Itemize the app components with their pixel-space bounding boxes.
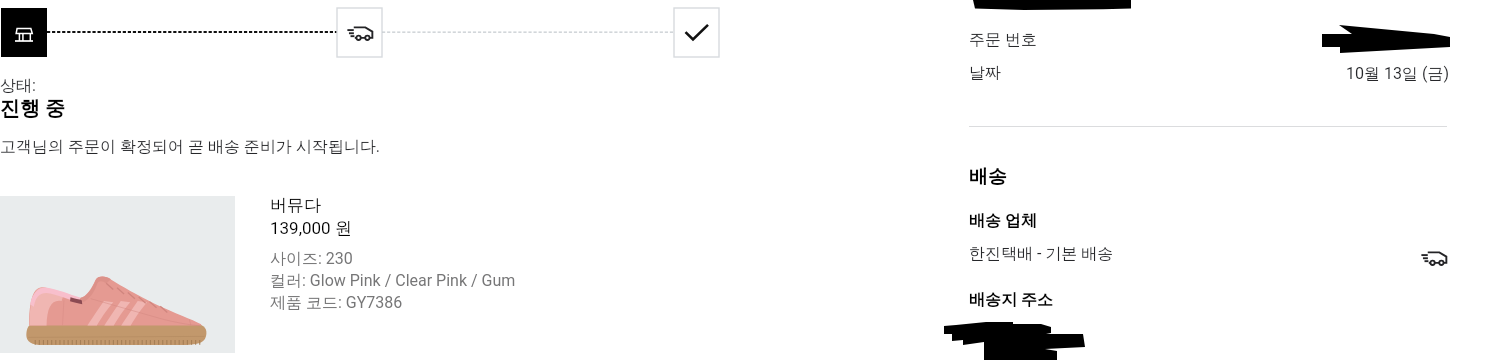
staticText: 진행 중 <box>0 94 66 121</box>
button[interactable]: Bermuda shoe <box>0 196 235 353</box>
staticText: 제품 코드: GY7386 <box>270 293 403 313</box>
staticText: 사이즈: 230 <box>270 249 353 269</box>
staticText: 배송 업체 <box>969 211 1037 231</box>
staticText: 버뮤다 <box>270 195 321 216</box>
button[interactable]: Shipped <box>337 8 382 57</box>
button[interactable]: Delivered <box>674 8 719 57</box>
button[interactable]: Track shipment <box>1421 250 1447 265</box>
staticText: 한진택배 - 기본 배송 <box>969 244 1114 264</box>
staticText: 날짜 <box>969 63 1001 83</box>
button[interactable]: Order confirmed <box>1 8 47 57</box>
staticText: 고객님의 주문이 확정되어 곧 배송 준비가 시작됩니다. <box>0 137 381 157</box>
staticText: 상태: <box>0 76 36 96</box>
staticText: 주문 번호 <box>969 30 1037 50</box>
staticText: 10월 13일 (금) <box>1200 64 1449 84</box>
staticText: 컬러: Glow Pink / Clear Pink / Gum <box>270 271 516 291</box>
staticText: 배송 <box>969 165 1007 189</box>
staticText: 139,000 원 <box>270 218 352 239</box>
staticText: 배송지 주소 <box>969 290 1053 310</box>
